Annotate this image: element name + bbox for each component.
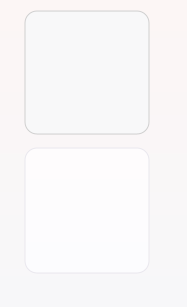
button[interactable]: Top card: [25, 11, 149, 134]
